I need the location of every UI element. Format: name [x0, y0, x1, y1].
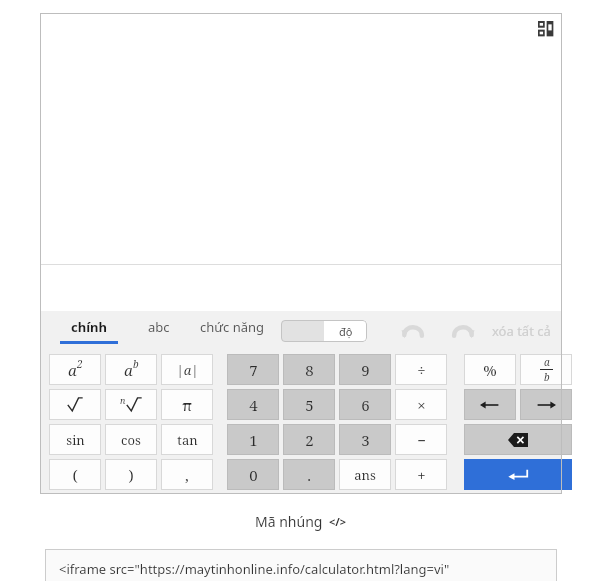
button[interactable]: n [105, 389, 157, 420]
staticText: b [544, 370, 550, 384]
button[interactable]: chức năng [198, 318, 267, 344]
button[interactable]: tan [161, 424, 213, 455]
staticText: chính [71, 318, 107, 336]
staticText: × [417, 395, 426, 415]
staticText: xóa tất cả [492, 322, 551, 340]
staticText: 5 [305, 395, 314, 415]
staticText: . [307, 465, 311, 485]
staticText: π [182, 395, 192, 415]
staticText: , [185, 465, 189, 485]
button[interactable]: 1 [227, 424, 279, 455]
button[interactable]: 8 [283, 354, 335, 385]
button[interactable]: sin [49, 424, 101, 455]
staticText: + [417, 465, 426, 485]
button[interactable]: ans [339, 459, 391, 490]
button[interactable]: Move left [464, 389, 516, 420]
staticText: b [133, 357, 139, 371]
button[interactable]: , [161, 459, 213, 490]
button[interactable]: 9 [339, 354, 391, 385]
staticText: chức năng [200, 318, 265, 336]
button[interactable]: ÷ [395, 354, 447, 385]
staticText: sin [66, 431, 85, 449]
staticText: 2 [305, 430, 314, 450]
button[interactable]: − [395, 424, 447, 455]
staticText: 6 [361, 395, 370, 415]
button[interactable]: 7 [227, 354, 279, 385]
button[interactable]: |a| [161, 354, 213, 385]
staticText: Mã nhúng [255, 512, 323, 531]
button[interactable]: a [105, 354, 157, 385]
button[interactable]: 6 [339, 389, 391, 420]
staticText: % [483, 360, 497, 380]
button[interactable]: 3 [339, 424, 391, 455]
button[interactable]: Redo [447, 317, 481, 345]
staticText: 0 [249, 465, 258, 485]
staticText: cos [121, 431, 141, 449]
staticText: 2 [77, 357, 83, 371]
staticText: tan [177, 431, 198, 449]
staticText: abc [148, 318, 170, 336]
button[interactable]: % [464, 354, 516, 385]
staticText: 8 [305, 360, 314, 380]
staticText: 9 [361, 360, 370, 380]
button[interactable]: 5 [283, 389, 335, 420]
staticText: 7 [249, 360, 258, 380]
button[interactable]: Undo [395, 317, 429, 345]
button[interactable]: ( [49, 459, 101, 490]
button[interactable]: Enter [464, 459, 572, 490]
button[interactable]: . [283, 459, 335, 490]
button[interactable]: Backspace [464, 424, 572, 455]
button[interactable]: ) [105, 459, 157, 490]
staticText: độ [339, 324, 353, 339]
button[interactable]: 4 [227, 389, 279, 420]
button[interactable]: 0 [227, 459, 279, 490]
button[interactable]: xóa tất cả [492, 317, 551, 345]
button[interactable]: Keyboard layout [536, 19, 556, 39]
button[interactable]: + [395, 459, 447, 490]
button[interactable]: × [395, 389, 447, 420]
button[interactable]: chính [58, 318, 120, 344]
staticText: 4 [249, 395, 258, 415]
button[interactable]: abc [146, 318, 172, 344]
staticText: a [124, 360, 133, 380]
staticText: a [544, 355, 550, 369]
button[interactable]: 2 [283, 424, 335, 455]
button[interactable]: cos [105, 424, 157, 455]
staticText: 1 [249, 430, 258, 450]
button[interactable]: Fraction a over b [520, 354, 572, 385]
button[interactable]: a [49, 354, 101, 385]
staticText: ÷ [417, 360, 426, 380]
staticText: </> [329, 514, 347, 529]
staticText: ( [72, 465, 78, 485]
button[interactable]: Move right [520, 389, 572, 420]
button[interactable]: Mã nhúng [255, 512, 347, 531]
staticText: <iframe src="https://maytinhonline.info/… [59, 560, 450, 578]
staticText: − [417, 430, 426, 450]
staticText: |a| [176, 361, 199, 379]
button[interactable]: Angle unit degree [281, 320, 367, 342]
staticText: a [68, 360, 77, 380]
staticText: n [120, 394, 126, 406]
button[interactable] [49, 389, 101, 420]
staticText: 3 [361, 430, 370, 450]
staticText: ans [354, 466, 376, 484]
staticText: ) [128, 465, 134, 485]
button[interactable]: π [161, 389, 213, 420]
